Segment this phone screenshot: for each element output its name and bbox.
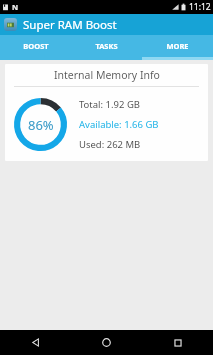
button[interactable]: Recent apps: [142, 330, 213, 355]
button[interactable]: Back: [0, 330, 71, 355]
staticText: Available: 1.66 GB: [79, 118, 159, 131]
staticText: N: [12, 2, 19, 12]
button[interactable]: MORE: [142, 35, 213, 57]
staticText: TASKS: [95, 41, 118, 51]
button[interactable]: BOOST: [0, 35, 71, 57]
staticText: Total: 1.92 GB: [79, 98, 140, 111]
staticText: Used: 262 MB: [79, 138, 141, 151]
staticText: Super RAM Boost: [23, 17, 117, 33]
button[interactable]: Home: [71, 330, 142, 355]
staticText: 86%: [28, 116, 54, 134]
button[interactable]: TASKS: [71, 35, 142, 57]
staticText: MORE: [166, 41, 189, 51]
staticText: BOOST: [23, 41, 49, 51]
staticText: 11:12: [189, 1, 211, 13]
staticText: Internal Memory Info: [54, 68, 160, 82]
button[interactable]: Internal Memory Info: [5, 64, 208, 161]
